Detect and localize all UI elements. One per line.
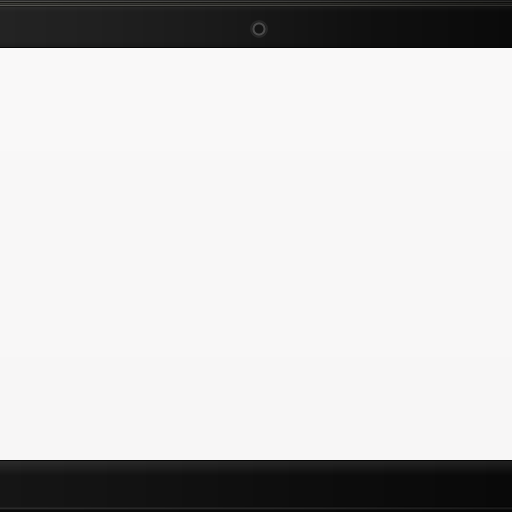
other: Front camera [0,0,512,48]
